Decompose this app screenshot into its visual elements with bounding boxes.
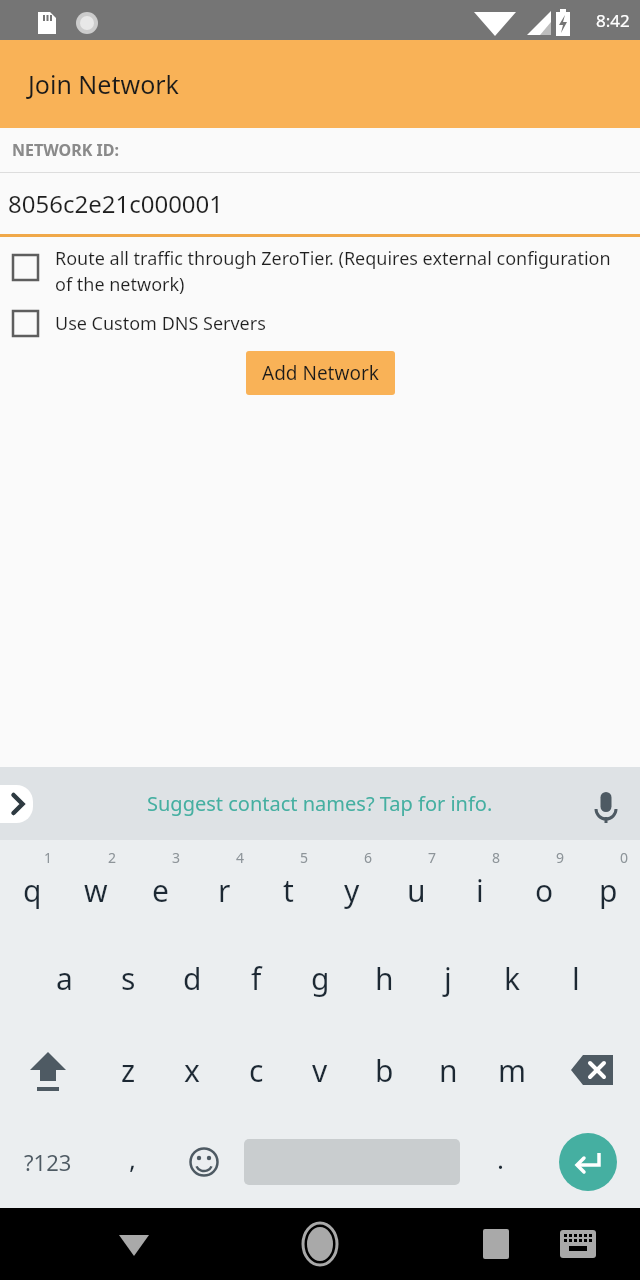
staticText: . (497, 1141, 504, 1176)
button[interactable]: ?123 (0, 1116, 96, 1208)
staticText: w (84, 870, 108, 911)
staticText: h (375, 958, 394, 999)
button[interactable]: f (224, 932, 288, 1024)
staticText: 0 (620, 848, 629, 867)
button[interactable]: Shift (0, 1024, 96, 1116)
staticText: y (344, 870, 360, 911)
button[interactable]: Back (110, 1220, 158, 1268)
button[interactable]: Add Network (246, 351, 395, 395)
staticText: o (535, 870, 554, 911)
staticText: x (184, 1050, 200, 1091)
button[interactable]: Home (296, 1220, 344, 1268)
button[interactable]: Enter (559, 1133, 617, 1191)
button[interactable]: n (416, 1024, 480, 1116)
staticText: 6 (364, 848, 373, 867)
button[interactable]: 8 (448, 840, 512, 932)
staticText: Add Network (262, 360, 379, 386)
staticText: 1 (44, 848, 53, 867)
staticText: 2 (108, 848, 117, 867)
button[interactable]: a (32, 932, 96, 1024)
button[interactable]: 5 (256, 840, 320, 932)
staticText: l (572, 958, 580, 999)
staticText: , (129, 1141, 136, 1176)
button[interactable]: . (464, 1116, 536, 1208)
button[interactable]: Emoji (168, 1116, 240, 1208)
staticText: d (183, 958, 202, 999)
staticText: g (311, 958, 330, 999)
button[interactable]: Route all traffic through ZeroTier. (Req… (0, 246, 640, 297)
staticText: 7 (428, 848, 437, 867)
button[interactable]: d (160, 932, 224, 1024)
staticText: b (375, 1050, 394, 1091)
staticText: 9 (556, 848, 565, 867)
button[interactable]: 2 (64, 840, 128, 932)
staticText: v (312, 1050, 328, 1091)
button[interactable]: h (352, 932, 416, 1024)
button[interactable]: 1 (0, 840, 64, 932)
button[interactable]: , (96, 1116, 168, 1208)
button[interactable]: Suggest contact names? Tap for info. (147, 790, 493, 817)
button[interactable]: v (288, 1024, 352, 1116)
staticText: 5 (300, 848, 309, 867)
staticText: s (121, 958, 136, 999)
staticText: NETWORK ID: (12, 139, 119, 161)
staticText: p (599, 870, 618, 911)
staticText: Use Custom DNS Servers (55, 311, 266, 336)
staticText: z (121, 1050, 136, 1091)
staticText: n (439, 1050, 458, 1091)
staticText: c (249, 1050, 264, 1091)
staticText: 8056c2e21c000001 (8, 187, 224, 220)
button[interactable]: 7 (384, 840, 448, 932)
staticText: m (498, 1050, 527, 1091)
staticText: a (56, 958, 73, 999)
button[interactable]: l (544, 932, 608, 1024)
button[interactable]: b (352, 1024, 416, 1116)
button[interactable]: 6 (320, 840, 384, 932)
staticText: e (152, 870, 169, 911)
button[interactable]: 3 (128, 840, 192, 932)
button[interactable]: c (224, 1024, 288, 1116)
button[interactable]: j (416, 932, 480, 1024)
staticText: f (251, 958, 262, 999)
staticText: k (504, 958, 521, 999)
staticText: j (444, 958, 452, 999)
button[interactable]: 0 (576, 840, 640, 932)
button[interactable]: 4 (192, 840, 256, 932)
button[interactable]: z (96, 1024, 160, 1116)
button[interactable]: x (160, 1024, 224, 1116)
staticText: Route all traffic through ZeroTier. (Req… (55, 246, 628, 297)
button[interactable]: s (96, 932, 160, 1024)
staticText: q (23, 870, 42, 911)
button[interactable]: Backspace (544, 1024, 640, 1116)
button[interactable]: Expand suggestions (0, 785, 33, 823)
button[interactable]: Recents (472, 1220, 520, 1268)
staticText: Join Network (28, 67, 179, 101)
button[interactable]: Voice input (590, 788, 622, 820)
staticText: ?123 (24, 1147, 72, 1177)
staticText: i (476, 870, 484, 911)
staticText: t (283, 870, 294, 911)
staticText: 8 (492, 848, 501, 867)
staticText: 4 (236, 848, 245, 867)
button[interactable]: 9 (512, 840, 576, 932)
button[interactable]: Use Custom DNS Servers (0, 310, 640, 337)
staticText: 3 (172, 848, 181, 867)
staticText: r (218, 870, 231, 911)
staticText: u (407, 870, 426, 911)
staticText: 8:42 (596, 9, 630, 32)
button[interactable]: g (288, 932, 352, 1024)
button[interactable]: k (480, 932, 544, 1024)
button[interactable]: m (480, 1024, 544, 1116)
button[interactable]: Switch keyboard (554, 1220, 602, 1268)
